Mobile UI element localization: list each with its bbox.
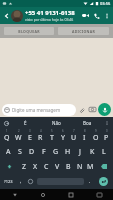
button[interactable] (11, 10, 23, 22)
button[interactable]: L (98, 144, 110, 159)
button[interactable]: S (14, 144, 26, 159)
staticText: 5 (51, 129, 53, 133)
button[interactable]: G (50, 144, 62, 159)
button[interactable]: Keyboard settings (103, 119, 111, 127)
button[interactable]: D (26, 144, 38, 159)
button[interactable]: 8 (79, 128, 90, 144)
button[interactable]: J (74, 144, 86, 159)
button[interactable]: Google (2, 119, 10, 127)
staticText: ?123 (4, 179, 13, 184)
staticText: 1 (6, 129, 8, 133)
staticText: visto por último hoje às 03:46 (25, 17, 74, 22)
staticText: X (33, 162, 38, 172)
button[interactable]: X (30, 159, 41, 174)
button[interactable]: Enter (94, 175, 112, 188)
button[interactable]: B (63, 159, 74, 174)
staticText: S (18, 147, 22, 157)
staticText: G (53, 147, 59, 157)
staticText: ADICIONAR (72, 29, 95, 34)
button[interactable]: , (16, 175, 25, 188)
button[interactable]: 1 (1, 128, 13, 144)
staticText: F (42, 147, 46, 157)
button[interactable]: Backspace (96, 159, 112, 174)
staticText: L (102, 147, 106, 157)
button[interactable]: Camera (87, 104, 98, 115)
button[interactable]: Boa (72, 120, 103, 126)
staticText: Q (4, 133, 10, 143)
button[interactable]: Recent apps (57, 189, 85, 200)
button[interactable]: 0 (101, 128, 112, 144)
staticText: 4 (40, 129, 42, 133)
button[interactable]: Emoji (25, 175, 36, 188)
button[interactable]: Back (0, 189, 29, 200)
button[interactable]: Back (2, 11, 11, 20)
button[interactable]: 7 (68, 128, 79, 144)
staticText: , (20, 178, 22, 185)
staticText: K (90, 147, 95, 157)
button[interactable]: A (3, 144, 14, 159)
staticText: J (79, 147, 81, 157)
button[interactable]: Attach (76, 104, 87, 115)
staticText: 2 (18, 129, 20, 133)
staticText: Não (52, 120, 61, 126)
staticText: Y (61, 133, 65, 143)
staticText: +55 41 9131-6138 (25, 9, 75, 17)
button[interactable]: Call (91, 10, 102, 21)
button[interactable]: +55 41 9131-6138 (25, 9, 80, 22)
button[interactable]: C (41, 159, 52, 174)
staticText: 7 (73, 129, 75, 133)
staticText: O (93, 133, 99, 143)
staticText: . (89, 178, 91, 185)
button[interactable]: N (74, 159, 85, 174)
staticText: D (29, 147, 35, 157)
button[interactable]: 3 (24, 128, 35, 144)
staticText: N (77, 162, 83, 172)
button[interactable]: Home (29, 189, 57, 200)
staticText: 3 (29, 129, 31, 133)
button[interactable]: K (86, 144, 98, 159)
button[interactable]: F (38, 144, 50, 159)
staticText: M (87, 162, 94, 172)
button[interactable]: 6 (57, 128, 68, 144)
button[interactable]: 9 (90, 128, 101, 144)
staticText: B (66, 162, 71, 172)
staticText: H (65, 147, 71, 157)
staticText: P (104, 133, 109, 143)
staticText: U (71, 133, 77, 143)
staticText: BLOQUEAR (18, 29, 40, 34)
button[interactable]: Não (41, 120, 72, 126)
staticText: T (50, 133, 54, 143)
staticText: C (44, 162, 49, 172)
button[interactable]: 5 (46, 128, 57, 144)
button[interactable]: 2 (13, 128, 24, 144)
staticText: 0 (106, 129, 108, 133)
button[interactable]: Z (18, 159, 30, 174)
button[interactable]: 4 (35, 128, 46, 144)
button[interactable]: Shift (1, 159, 18, 174)
staticText: E (28, 133, 32, 143)
button[interactable]: M (85, 159, 96, 174)
staticText: 9 (95, 129, 97, 133)
button[interactable]: É (10, 120, 41, 126)
button[interactable]: V (52, 159, 63, 174)
button[interactable]: Digite uma mensagem (4, 104, 74, 116)
button[interactable]: Video call (80, 10, 91, 21)
button[interactable]: BLOQUEAR (4, 27, 54, 35)
staticText: 03:56 (100, 1, 111, 6)
staticText: 8 (84, 129, 86, 133)
button[interactable]: H (62, 144, 74, 159)
staticText: V (55, 162, 60, 172)
button[interactable]: Voice message (98, 103, 111, 116)
button[interactable]: Hide keyboard (85, 189, 113, 200)
staticText: Digite uma mensagem (12, 107, 61, 113)
button[interactable]: More options (102, 11, 111, 20)
staticText: A (6, 147, 11, 157)
button[interactable]: . (85, 175, 94, 188)
staticText: I (83, 133, 86, 143)
staticText: R (38, 133, 43, 143)
staticText: 6 (62, 129, 64, 133)
button[interactable]: ADICIONAR (58, 27, 109, 35)
button[interactable]: ?123 (1, 175, 16, 188)
staticText: Z (22, 162, 27, 172)
